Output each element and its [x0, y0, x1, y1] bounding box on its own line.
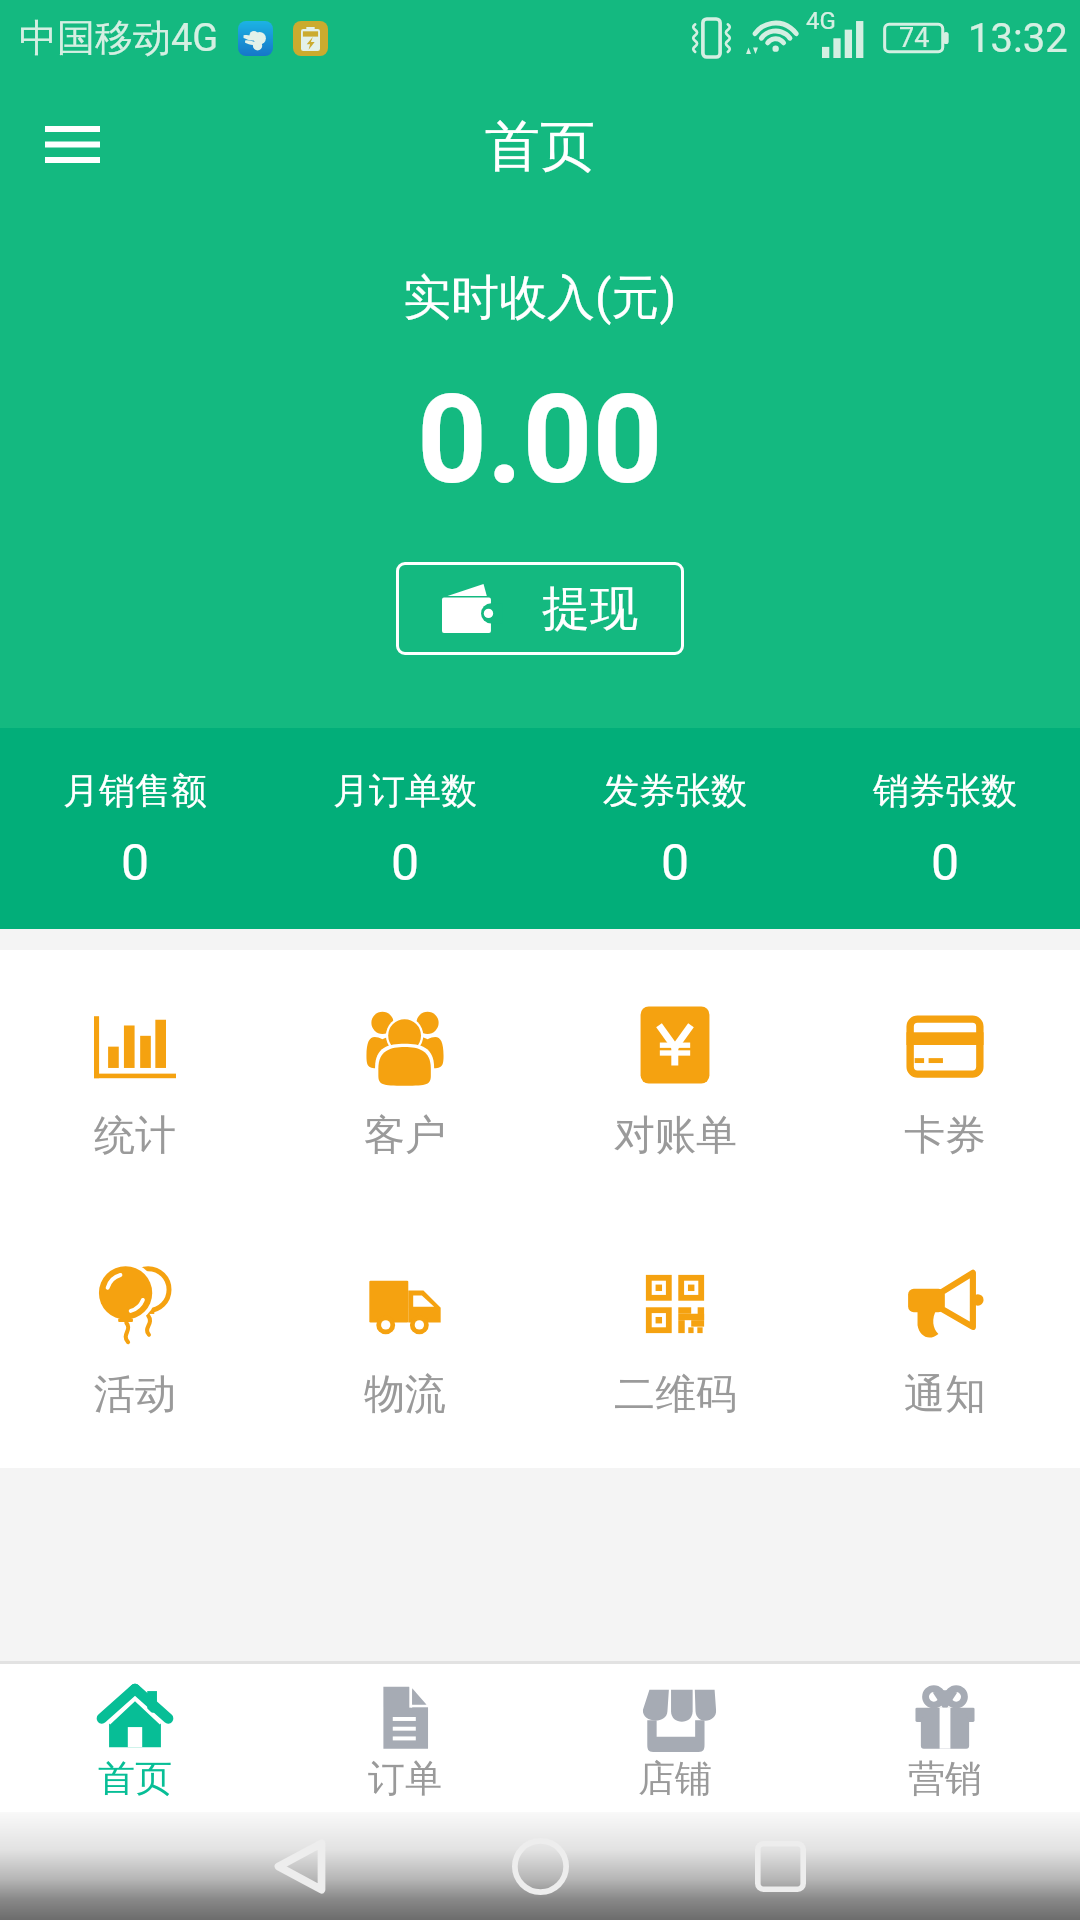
- button[interactable]: 客户: [270, 1004, 540, 1162]
- button[interactable]: 卡券: [810, 1004, 1080, 1162]
- staticText: 0: [661, 834, 690, 893]
- staticText: 提现: [542, 579, 638, 639]
- button[interactable]: 物流: [270, 1263, 540, 1421]
- button[interactable]: Recents: [720, 1812, 840, 1920]
- staticText: 店铺: [638, 1755, 712, 1802]
- staticText: 统计: [94, 1110, 176, 1162]
- staticText: 销券张数: [873, 768, 1017, 813]
- button[interactable]: 活动: [0, 1263, 270, 1421]
- button[interactable]: Home: [480, 1812, 600, 1920]
- staticText: 对账单: [614, 1110, 737, 1162]
- staticText: 4G: [806, 7, 836, 35]
- staticText: 74: [899, 22, 930, 54]
- button[interactable]: 统计: [0, 1004, 270, 1162]
- staticText: 月销售额: [63, 768, 207, 813]
- staticText: 物流: [364, 1369, 446, 1421]
- button[interactable]: 订单: [270, 1664, 540, 1812]
- button[interactable]: 对账单: [540, 1004, 810, 1162]
- staticText: 营销: [908, 1755, 982, 1802]
- button[interactable]: 首页: [0, 1664, 270, 1812]
- staticText: 发券张数: [603, 768, 747, 813]
- staticText: 活动: [94, 1369, 176, 1421]
- staticText: 通知: [904, 1369, 986, 1421]
- staticText: 二维码: [614, 1369, 737, 1421]
- staticText: 0: [931, 834, 960, 893]
- staticText: 首页: [485, 112, 595, 181]
- button[interactable]: 月销售额: [0, 728, 270, 929]
- staticText: 13:32: [968, 15, 1068, 62]
- staticText: 中国移动4G: [19, 14, 219, 62]
- staticText: 首页: [98, 1755, 172, 1802]
- staticText: 订单: [368, 1755, 442, 1802]
- staticText: 客户: [364, 1110, 446, 1162]
- button[interactable]: 月订单数: [270, 728, 540, 929]
- button[interactable]: 提现: [396, 562, 684, 655]
- staticText: 卡券: [904, 1110, 986, 1162]
- button[interactable]: Menu: [16, 88, 128, 200]
- staticText: 0: [391, 834, 420, 893]
- button[interactable]: 发券张数: [540, 728, 810, 929]
- button[interactable]: 销券张数: [810, 728, 1080, 929]
- button[interactable]: 营销: [810, 1664, 1080, 1812]
- button[interactable]: 二维码: [540, 1263, 810, 1421]
- button[interactable]: Back: [240, 1812, 360, 1920]
- staticText: 实时收入(元): [403, 268, 677, 328]
- button[interactable]: 店铺: [540, 1664, 810, 1812]
- staticText: 0.00: [417, 369, 663, 512]
- staticText: 0: [121, 834, 150, 893]
- button[interactable]: 通知: [810, 1263, 1080, 1421]
- staticText: 月订单数: [333, 768, 477, 813]
